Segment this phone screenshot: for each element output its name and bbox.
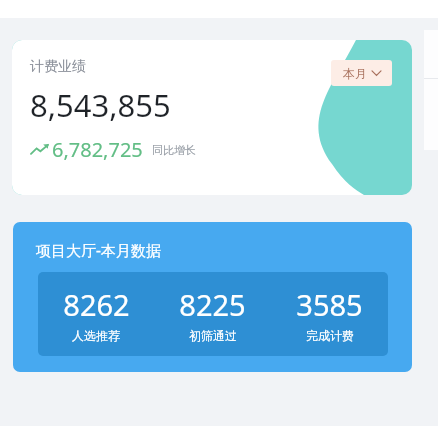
staticText: 人选推荐 xyxy=(72,328,120,343)
button[interactable]: 3585 xyxy=(271,272,388,356)
staticText: 完成计费 xyxy=(306,328,354,343)
staticText: 同比增长 xyxy=(152,143,196,157)
staticText: 6,782,725 xyxy=(52,136,143,163)
button[interactable]: 项目大厅-本月数据 xyxy=(13,222,412,372)
staticText: 本月 xyxy=(343,66,367,81)
button[interactable]: 8262 xyxy=(38,272,154,356)
staticText: 初筛通过 xyxy=(189,328,237,343)
staticText: 8262 xyxy=(63,285,130,324)
staticText: 8225 xyxy=(179,285,246,324)
staticText: 8,543,855 xyxy=(30,84,171,126)
staticText: 计费业绩 xyxy=(30,58,86,76)
staticText: 3585 xyxy=(296,285,363,324)
button[interactable]: 计费业绩 xyxy=(12,40,412,195)
staticText: 项目大厅-本月数据 xyxy=(36,240,161,260)
button[interactable]: 本月 xyxy=(331,60,392,86)
button[interactable]: 8225 xyxy=(154,272,271,356)
